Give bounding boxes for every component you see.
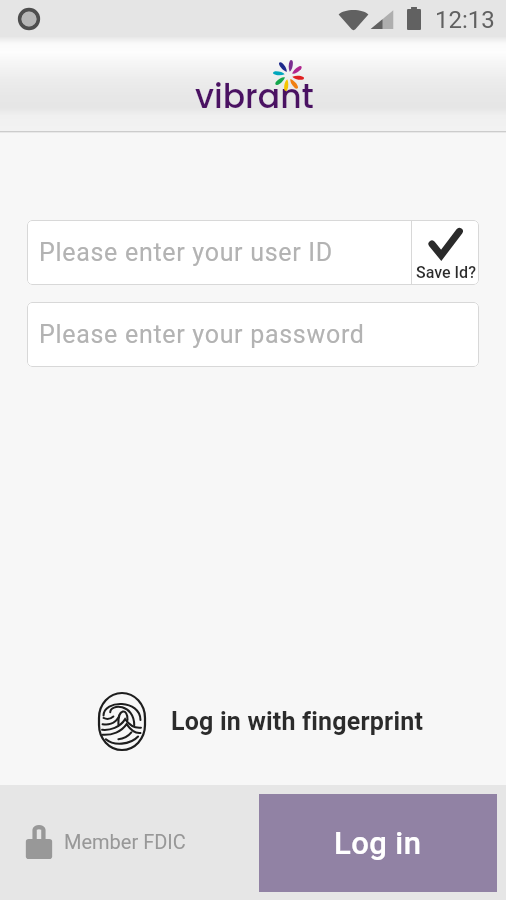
staticText: 12:13 bbox=[435, 6, 495, 34]
button[interactable]: Save Id? bbox=[412, 220, 479, 285]
staticText: Save Id? bbox=[416, 263, 476, 282]
staticText: Please enter your user ID bbox=[39, 238, 333, 267]
staticText: Member FDIC bbox=[64, 830, 186, 853]
button[interactable]: Log in bbox=[259, 794, 497, 892]
button[interactable]: Please enter your password bbox=[27, 302, 479, 367]
button[interactable]: Log in with fingerprint bbox=[98, 692, 506, 751]
staticText: Log in with fingerprint bbox=[171, 707, 424, 736]
staticText: vibrant bbox=[195, 73, 314, 119]
staticText: Please enter your password bbox=[39, 320, 365, 349]
staticText: Log in bbox=[334, 825, 422, 861]
button[interactable]: Member FDIC bbox=[25, 824, 186, 859]
button[interactable]: Please enter your user ID bbox=[27, 220, 411, 285]
